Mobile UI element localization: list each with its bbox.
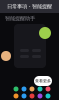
- staticText: 查看更多: [35, 78, 51, 83]
- button[interactable]: Action: [39, 27, 51, 39]
- staticText: 智能提醒助手: [5, 15, 35, 22]
- button[interactable]: 查看更多: [34, 76, 52, 86]
- button[interactable]: 日常事項・智能提醒: [0, 0, 59, 13]
- staticText: 日常事項・智能提醒: [7, 3, 52, 10]
